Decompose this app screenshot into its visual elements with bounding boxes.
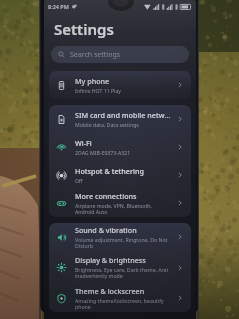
staticText: Wi-Fi	[75, 138, 92, 148]
button[interactable]: Search settings	[51, 46, 189, 63]
other: Open SIM card and mobile network	[176, 115, 184, 123]
staticText: Settings	[54, 19, 114, 39]
button[interactable]: More connections	[49, 189, 191, 217]
staticText: Airplane mode, VPN, Bluetooth, Android A…	[75, 202, 172, 216]
other: Open My phone	[176, 81, 184, 89]
staticText: Brightness, Eye care, Dark theme, Anti i…	[75, 266, 169, 280]
staticText: More connections	[75, 191, 137, 201]
staticText: Mobile data, Data settings	[75, 121, 139, 128]
button[interactable]: Theme & lockscreen	[49, 284, 191, 312]
staticText: 8:24 PM	[48, 3, 69, 10]
other: Open Display & brightness	[176, 264, 184, 272]
other: Open Wi-Fi	[176, 143, 184, 151]
button[interactable]: SIM card and mobile network	[49, 105, 191, 133]
staticText: Amazing theme/lockscreen, beautify phone	[75, 297, 172, 311]
staticText: Off	[75, 177, 83, 184]
staticText: Infinix HOT 11 Play	[75, 87, 122, 94]
button[interactable]: Hotspot & tethering	[49, 161, 191, 189]
staticText: 2DAG MIB-E0373-A321	[75, 149, 131, 156]
other: Open Hotspot & tethering	[176, 171, 184, 179]
staticText: Search settings	[70, 50, 121, 60]
staticText: Hotspot & tethering	[75, 166, 144, 176]
button[interactable]: Sound & vibration	[49, 223, 191, 251]
staticText: Display & brightness	[75, 255, 146, 265]
staticText: SIM card and mobile network	[75, 110, 172, 120]
staticText: Theme & lockscreen	[75, 286, 145, 296]
staticText: My phone	[75, 76, 110, 86]
staticText: Volume adjustment, Ringtone, Do Not Dist…	[75, 236, 172, 250]
other: Open Theme & lockscreen	[176, 294, 184, 302]
button[interactable]: Display & brightness	[49, 251, 191, 284]
button[interactable]: My phone	[49, 71, 191, 99]
other: Open Sound & vibration	[176, 233, 184, 241]
staticText: Sound & vibration	[75, 225, 137, 235]
button[interactable]: Wi-Fi	[49, 133, 191, 161]
other: Open More connections	[176, 199, 184, 207]
